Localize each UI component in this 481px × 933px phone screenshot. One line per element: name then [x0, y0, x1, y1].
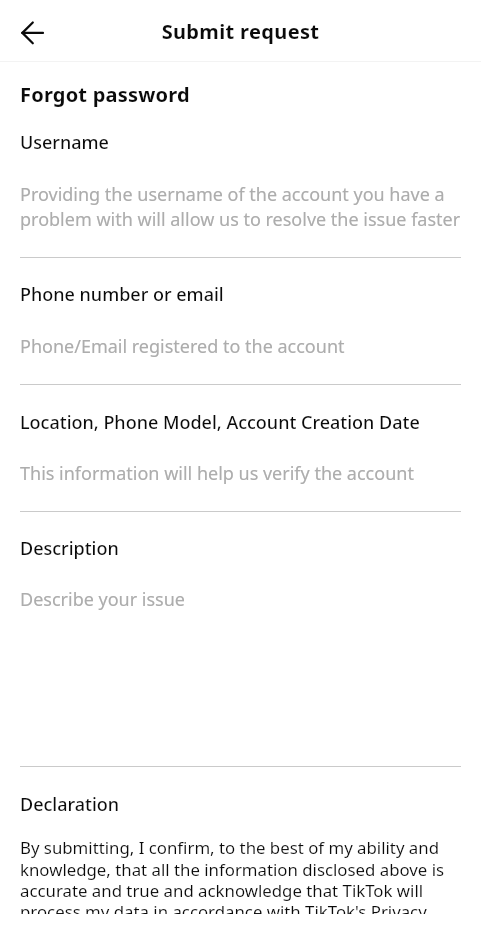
staticText: Declaration [20, 792, 462, 817]
staticText: Location, Phone Model, Account Creation … [20, 410, 462, 435]
button[interactable] [0, 258, 481, 384]
staticText: Describe your issue [20, 587, 462, 612]
staticText: Providing the username of the account yo… [20, 182, 462, 232]
staticText: This information will help us verify the… [20, 461, 462, 486]
staticText: Description [20, 536, 462, 561]
button[interactable] [0, 385, 481, 511]
staticText: Submit request [0, 18, 481, 45]
button[interactable]: Back [8, 8, 56, 56]
staticText: By submitting, I confirm, to the best of… [20, 836, 462, 914]
staticText: Forgot password [20, 81, 462, 108]
staticText: Phone/Email registered to the account [20, 334, 462, 359]
button[interactable] [0, 512, 481, 766]
staticText: Username [20, 130, 462, 155]
staticText: Phone number or email [20, 282, 462, 307]
button[interactable] [0, 70, 481, 257]
